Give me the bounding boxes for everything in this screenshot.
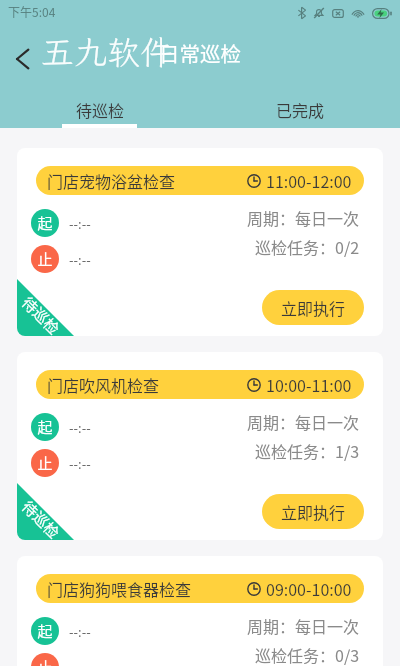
staticText: 待巡检 bbox=[19, 292, 65, 336]
staticText: 09:00-10:00 bbox=[266, 577, 352, 600]
staticText: 立即执行 bbox=[281, 296, 346, 319]
staticText: 门店吹风机检查 bbox=[47, 373, 160, 396]
staticText: 五九软件 bbox=[41, 30, 173, 73]
button[interactable]: Back bbox=[0, 37, 44, 81]
staticText: 巡检任务：1/3 bbox=[255, 439, 360, 462]
staticText: 立即执行 bbox=[281, 500, 346, 523]
staticText: 周期：每日一次 bbox=[247, 614, 360, 637]
staticText: 周期：每日一次 bbox=[247, 206, 360, 229]
staticText: 11:00-12:00 bbox=[266, 169, 352, 192]
staticText: 止 bbox=[37, 248, 53, 270]
staticText: --:-- bbox=[69, 214, 91, 233]
button[interactable]: 待巡检 bbox=[17, 352, 383, 540]
staticText: 起 bbox=[37, 416, 53, 438]
button[interactable]: 立即执行 bbox=[262, 290, 364, 325]
staticText: 巡检任务：0/2 bbox=[255, 235, 360, 258]
button[interactable]: 待巡检 bbox=[17, 556, 383, 666]
staticText: 门店宠物浴盆检查 bbox=[47, 169, 176, 192]
staticText: --:-- bbox=[69, 418, 91, 437]
staticText: 起 bbox=[37, 620, 53, 642]
staticText: 门店狗狗喂食器检查 bbox=[47, 577, 192, 600]
staticText: 巡检任务：0/3 bbox=[255, 643, 360, 666]
staticText: --:-- bbox=[69, 250, 91, 269]
staticText: 已完成 bbox=[276, 98, 325, 121]
staticText: 待巡检 bbox=[19, 496, 65, 540]
staticText: 日常巡检 bbox=[159, 38, 241, 68]
staticText: 止 bbox=[37, 656, 53, 666]
button[interactable]: 待巡检 bbox=[17, 148, 383, 336]
staticText: --:-- bbox=[69, 622, 91, 641]
staticText: --:-- bbox=[69, 454, 91, 473]
staticText: 待巡检 bbox=[76, 98, 125, 121]
staticText: 10:00-11:00 bbox=[266, 373, 352, 396]
button[interactable]: 已完成 bbox=[200, 90, 400, 128]
button[interactable]: 立即执行 bbox=[262, 494, 364, 529]
staticText: 周期：每日一次 bbox=[247, 410, 360, 433]
button[interactable]: 待巡检 bbox=[0, 90, 200, 128]
staticText: 下午5:04 bbox=[8, 3, 56, 20]
staticText: 起 bbox=[37, 212, 53, 234]
staticText: 止 bbox=[37, 452, 53, 474]
